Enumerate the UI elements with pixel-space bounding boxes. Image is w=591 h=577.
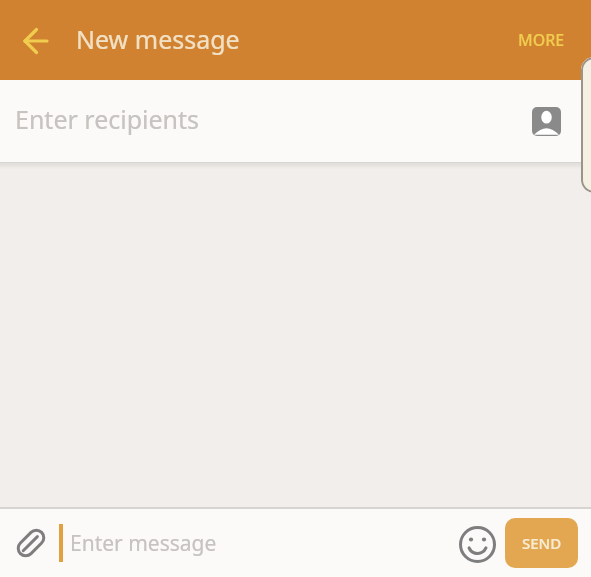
staticText: Enter recipients xyxy=(15,102,200,136)
button[interactable]: Enter recipients xyxy=(0,80,591,162)
staticText: New message xyxy=(76,22,240,56)
button[interactable] xyxy=(12,524,50,562)
button[interactable] xyxy=(460,526,495,561)
button[interactable] xyxy=(525,100,567,142)
button[interactable] xyxy=(14,18,58,62)
button[interactable]: MORE xyxy=(518,29,565,51)
staticText: Enter message xyxy=(70,529,217,558)
staticText: SEND xyxy=(522,533,562,553)
button[interactable]: SEND xyxy=(505,518,578,568)
staticText: MORE xyxy=(518,29,565,51)
